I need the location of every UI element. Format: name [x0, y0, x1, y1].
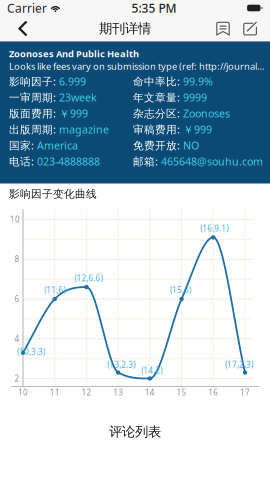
- staticText: NO: [183, 138, 199, 152]
- staticText: (14,2): [141, 365, 162, 376]
- staticText: 465648@souhu.com: [161, 154, 263, 168]
- staticText: 10: [18, 387, 28, 398]
- staticText: (16,9.1): [200, 223, 228, 234]
- staticText: 4: [14, 333, 19, 344]
- staticText: 杂志分区:: [133, 106, 183, 120]
- staticText: ￥999: [59, 106, 88, 120]
- staticText: 邮箱:: [133, 154, 161, 168]
- staticText: 16: [208, 387, 218, 398]
- staticText: 9999: [183, 90, 207, 104]
- button[interactable]: Back: [6, 13, 40, 43]
- staticText: 99.9%: [183, 74, 213, 88]
- staticText: 影响因子变化曲线: [9, 187, 97, 201]
- staticText: (15,6): [170, 285, 191, 295]
- staticText: 出版周期:: [9, 122, 59, 136]
- staticText: 13: [113, 387, 123, 398]
- staticText: 23week: [59, 90, 97, 104]
- staticText: 评论列表: [109, 424, 161, 440]
- staticText: (13,2.3): [107, 359, 135, 370]
- staticText: 期刊详情: [99, 20, 151, 37]
- staticText: Looks like fees vary on submission type …: [9, 60, 266, 72]
- staticText: 15: [177, 387, 187, 398]
- staticText: 17: [240, 387, 250, 398]
- staticText: 11: [50, 387, 60, 398]
- staticText: 电话:: [9, 154, 37, 168]
- staticText: 年文章量:: [133, 90, 183, 104]
- staticText: 6.999: [59, 74, 86, 88]
- staticText: Zoonoses: [183, 106, 230, 120]
- staticText: 8: [14, 254, 19, 264]
- staticText: 国家:: [9, 138, 37, 152]
- staticText: 14: [145, 387, 155, 398]
- staticText: 一审周期:: [9, 90, 59, 104]
- staticText: 6: [14, 294, 19, 304]
- staticText: 023-4888888: [37, 154, 100, 168]
- staticText: Carrier: [7, 0, 47, 16]
- staticText: America: [37, 138, 78, 152]
- staticText: magazine: [59, 122, 109, 136]
- button[interactable]: Bookmark: [210, 15, 236, 41]
- staticText: 5:35 PM: [131, 0, 176, 16]
- staticText: 12: [81, 387, 91, 398]
- staticText: 版面费用:: [9, 106, 59, 120]
- staticText: (10,3.3): [17, 346, 45, 357]
- staticText: 影响因子:: [9, 74, 59, 88]
- staticText: 免费开放:: [133, 138, 183, 152]
- staticText: (12,6.6): [74, 273, 102, 283]
- button[interactable]: Compose: [236, 15, 264, 41]
- staticText: Zoonoses And Public Health: [9, 47, 139, 60]
- staticText: (17,2.3): [225, 359, 253, 370]
- staticText: ￥999: [183, 122, 212, 136]
- staticText: 命中率比:: [133, 74, 183, 88]
- staticText: 2: [14, 373, 19, 384]
- staticText: 审稿费用:: [133, 122, 183, 136]
- staticText: 10: [10, 214, 20, 225]
- staticText: (11,6): [44, 285, 65, 295]
